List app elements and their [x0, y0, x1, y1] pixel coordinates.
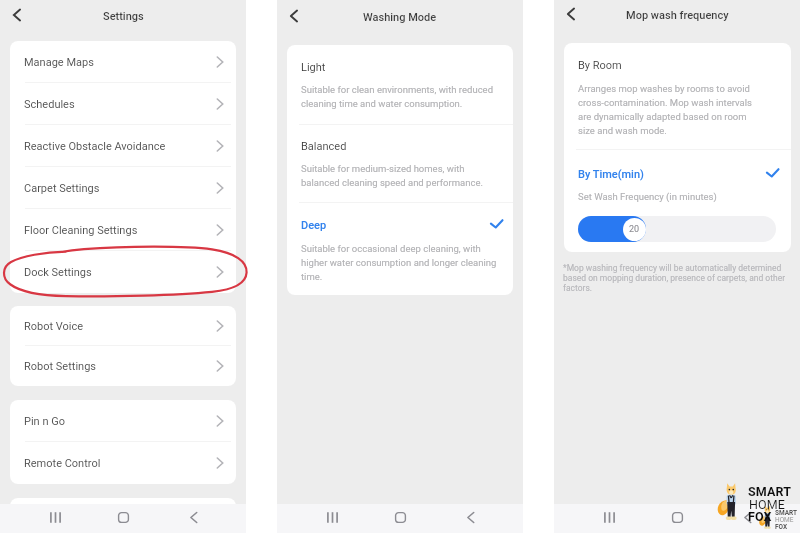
button[interactable]: Back	[559, 3, 581, 25]
staticText: By Room	[578, 59, 622, 72]
staticText: FOX	[775, 523, 788, 531]
staticText: HOME	[749, 497, 785, 512]
staticText: SMART	[748, 484, 792, 499]
button[interactable]: Light	[287, 45, 513, 124]
button[interactable]: Robot Settings	[10, 346, 236, 386]
staticText: Floor Cleaning Settings	[24, 224, 214, 237]
button[interactable]: Home	[110, 504, 136, 530]
staticText: Suitable for clean environments, with re…	[301, 84, 503, 110]
staticText: Mop wash frequency	[626, 9, 729, 22]
button[interactable]: Pin n Go	[10, 400, 236, 442]
staticText: Robot Settings	[24, 360, 214, 373]
staticText: Reactive Obstacle Avoidance	[24, 140, 214, 153]
staticText: Set Wash Frequency (in minutes)	[578, 191, 717, 202]
button[interactable]: Deep	[287, 203, 513, 295]
staticText: SMART	[775, 509, 798, 517]
button[interactable]: Back	[179, 504, 205, 530]
staticText: Dock Settings	[24, 266, 214, 279]
staticText: Washing Mode	[363, 11, 437, 24]
staticText: *Mop washing frequency will be automatic…	[563, 263, 789, 293]
button[interactable]: Back	[5, 4, 27, 26]
staticText: Robot Voice	[24, 320, 214, 333]
button[interactable]: Home	[664, 504, 690, 530]
button[interactable]: Recent apps	[42, 504, 68, 530]
staticText: Schedules	[24, 98, 214, 111]
staticText: Suitable for medium-sized homes, with ba…	[301, 163, 503, 189]
staticText: Deep	[301, 219, 488, 232]
button[interactable]: Recent apps	[319, 504, 345, 530]
staticText: By Time(min)	[578, 168, 764, 181]
staticText: Carpet Settings	[24, 182, 214, 195]
button[interactable]: Schedules	[10, 83, 236, 125]
button[interactable]: Back	[733, 504, 759, 530]
staticText: Manage Maps	[24, 56, 214, 69]
button[interactable]: Back	[282, 5, 304, 27]
staticText: Balanced	[301, 140, 503, 153]
staticText: Settings	[103, 10, 144, 23]
staticText: Suitable for occasional deep cleaning, w…	[301, 243, 503, 283]
button[interactable]: Balanced	[287, 125, 513, 202]
staticText: FOX	[748, 509, 772, 524]
button[interactable]: Back	[456, 504, 482, 530]
button[interactable]: Recent apps	[596, 504, 622, 530]
button[interactable]: Reactive Obstacle Avoidance	[10, 125, 236, 167]
staticText: Pin n Go	[24, 415, 214, 428]
staticText: Remote Control	[24, 457, 214, 470]
button[interactable]: Dock Settings	[10, 251, 236, 293]
button[interactable]: Wash frequency slider	[578, 216, 776, 242]
staticText: HOME	[775, 516, 794, 524]
button[interactable]: Carpet Settings	[10, 167, 236, 209]
button[interactable]: Home	[387, 504, 413, 530]
button[interactable]: Floor Cleaning Settings	[10, 209, 236, 251]
staticText: 20	[629, 224, 640, 235]
button[interactable]: By Time(min)	[564, 150, 791, 252]
button[interactable]: By Room	[564, 43, 791, 149]
staticText: Light	[301, 61, 503, 74]
button[interactable]: Manage Maps	[10, 41, 236, 83]
button[interactable]: Remote Control	[10, 442, 236, 484]
button[interactable]: Robot Voice	[10, 306, 236, 346]
staticText: Arranges mop washes by rooms to avoid cr…	[578, 83, 762, 137]
